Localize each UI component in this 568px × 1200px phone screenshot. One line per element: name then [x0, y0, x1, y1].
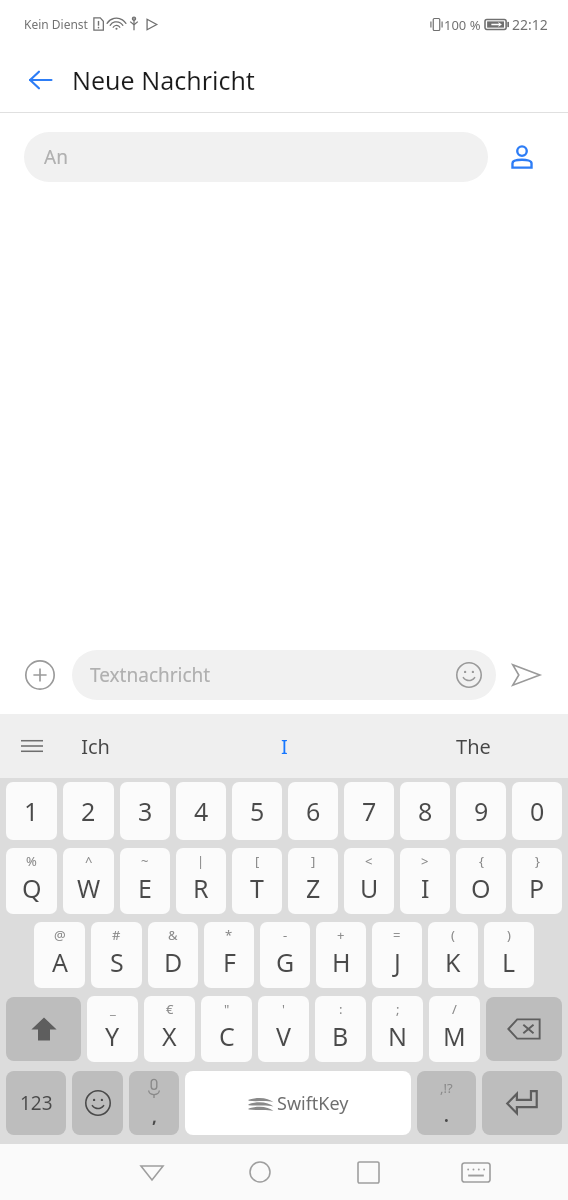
button[interactable]: Umschalt [6, 997, 81, 1061]
button[interactable]: % [6, 848, 57, 914]
button[interactable]: # [91, 922, 142, 988]
button[interactable]: 6 [288, 782, 338, 840]
staticText: E [138, 871, 152, 905]
staticText: ] [311, 852, 316, 870]
button[interactable]: 2 [63, 782, 114, 840]
staticText: 123 [20, 1090, 53, 1116]
staticText: ^ [85, 852, 93, 870]
staticText: C [219, 1019, 235, 1053]
button[interactable]: Anhang hinzufügen [18, 653, 62, 697]
button[interactable]: The [379, 714, 568, 778]
button[interactable]: / [429, 996, 480, 1062]
button[interactable]: Spracheingabe [129, 1071, 179, 1135]
button[interactable]: [ [232, 848, 282, 914]
button[interactable]: ) [484, 922, 534, 988]
button[interactable]: < [344, 848, 394, 914]
button[interactable]: Senden [502, 651, 550, 699]
staticText: 100 % [444, 16, 481, 34]
staticText: S [110, 945, 124, 979]
button[interactable]: - [260, 922, 310, 988]
button[interactable]: ^ [63, 848, 114, 914]
staticText: U [360, 871, 379, 905]
staticText: _ [110, 1000, 116, 1018]
staticText: ( [451, 926, 455, 944]
button[interactable]: { [456, 848, 506, 914]
button[interactable]: Zurück [16, 56, 64, 104]
button[interactable]: ~ [120, 848, 170, 914]
button[interactable]: SwiftKey [185, 1071, 411, 1135]
button[interactable]: Startseite [206, 1144, 314, 1200]
staticText: 3 [138, 794, 153, 828]
staticText: 6 [306, 794, 321, 828]
staticText: / [452, 1000, 457, 1018]
button[interactable]: 0 [512, 782, 562, 840]
button[interactable]: € [144, 996, 195, 1062]
staticText: R [193, 871, 209, 905]
button[interactable]: ; [372, 996, 423, 1062]
staticText: I [281, 733, 288, 760]
staticText: } [535, 852, 540, 870]
staticText: @ [54, 926, 66, 944]
button[interactable]: Emoji [452, 658, 486, 692]
staticText: Q [22, 871, 42, 905]
staticText: , [152, 1105, 157, 1128]
button[interactable]: 7 [344, 782, 394, 840]
button[interactable]: Ich [0, 714, 190, 778]
button[interactable]: Satzzeichen [417, 1071, 476, 1135]
button[interactable]: Kontakte [500, 135, 544, 179]
button[interactable]: Zuletzt verwendet [314, 1144, 422, 1200]
staticText: 5 [250, 794, 265, 828]
button[interactable]: Eingabe [482, 1071, 562, 1135]
staticText: > [421, 852, 429, 870]
button[interactable]: 1 [6, 782, 57, 840]
staticText: F [223, 945, 236, 979]
button[interactable]: > [400, 848, 450, 914]
staticText: < [365, 852, 373, 870]
staticText: ) [507, 926, 511, 944]
button[interactable]: Emoji [72, 1071, 123, 1135]
button[interactable]: + [316, 922, 366, 988]
button[interactable]: Textnachricht [72, 650, 496, 700]
button[interactable]: " [201, 996, 252, 1062]
button[interactable]: Tastatur ausblenden [422, 1144, 530, 1200]
staticText: * [225, 926, 233, 944]
staticText: D [164, 945, 183, 979]
button[interactable]: 4 [176, 782, 226, 840]
staticText: X [162, 1019, 177, 1053]
button[interactable]: | [176, 848, 226, 914]
staticText: M [443, 1019, 466, 1053]
button[interactable]: I [190, 714, 379, 778]
staticText: . [444, 1104, 449, 1127]
button[interactable]: Menü [10, 724, 54, 768]
button[interactable]: ' [258, 996, 309, 1062]
staticText: Z [306, 871, 321, 905]
button[interactable]: 5 [232, 782, 282, 840]
button[interactable]: _ [87, 996, 138, 1062]
staticText: % [26, 852, 37, 870]
button[interactable]: An [24, 132, 488, 182]
staticText: 9 [474, 794, 489, 828]
staticText: The [456, 733, 491, 760]
staticText: Y [105, 1019, 120, 1053]
staticText: Ich [81, 733, 110, 760]
staticText: - [283, 926, 288, 944]
staticText: I [421, 871, 430, 905]
staticText: K [445, 945, 461, 979]
staticText: ' [282, 1000, 285, 1018]
button[interactable]: Zahlen [6, 1071, 66, 1135]
button[interactable]: : [315, 996, 366, 1062]
button[interactable]: & [148, 922, 198, 988]
button[interactable]: 8 [400, 782, 450, 840]
button[interactable]: 3 [120, 782, 170, 840]
button[interactable]: ( [428, 922, 478, 988]
button[interactable]: Löschen [486, 997, 562, 1061]
button[interactable]: @ [34, 922, 85, 988]
button[interactable]: * [204, 922, 254, 988]
button[interactable]: 9 [456, 782, 506, 840]
button[interactable]: Zurück [98, 1144, 206, 1200]
button[interactable]: } [512, 848, 562, 914]
staticText: 0 [530, 794, 545, 828]
staticText: ; [396, 1000, 400, 1018]
button[interactable]: = [372, 922, 422, 988]
button[interactable]: ] [288, 848, 338, 914]
